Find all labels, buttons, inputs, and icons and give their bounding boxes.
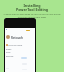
staticText: Account name	[8, 44, 23, 47]
staticText: Sync	[6, 51, 11, 54]
button[interactable]	[21, 57, 27, 59]
button[interactable]: Profile	[6, 35, 10, 39]
staticText: Installing PowerTool Editing	[2, 3, 62, 12]
staticText: Backup	[6, 55, 14, 58]
staticText: Email	[6, 48, 12, 51]
staticText: Retouch	[11, 36, 23, 40]
staticText: A quick step by step guide to set it all…	[3, 13, 61, 19]
button[interactable]: Premium	[26, 30, 30, 31]
